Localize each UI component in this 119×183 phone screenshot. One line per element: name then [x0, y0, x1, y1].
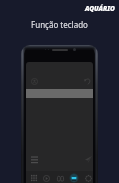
button[interactable]: Settings: [83, 173, 93, 183]
button[interactable]: Menu: [28, 153, 40, 165]
button[interactable]: Keyboard: [69, 173, 79, 183]
button[interactable]: Account: [28, 75, 40, 87]
staticText: Função teclado: [0, 19, 119, 30]
button[interactable]: Emoji: [29, 173, 39, 183]
button[interactable]: GIF: [41, 173, 51, 183]
button[interactable]: Undo: [82, 75, 93, 87]
button[interactable]: AQUARIO: [85, 4, 115, 13]
button[interactable]: Stickers: [55, 173, 65, 183]
button[interactable]: Send: [82, 153, 93, 165]
staticText: AQUÁRIO: [85, 4, 115, 13]
